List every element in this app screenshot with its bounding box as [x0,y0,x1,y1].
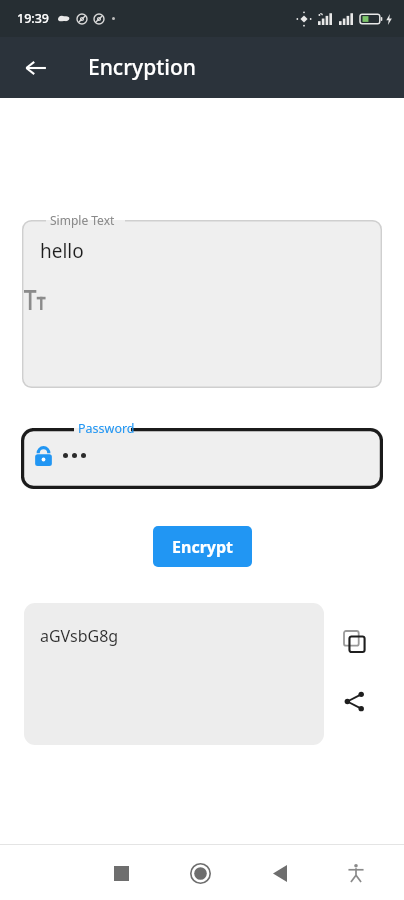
button[interactable]: Text size [24,290,46,310]
staticText: aGVsbG8g [40,625,119,647]
button[interactable]: Copy [334,621,374,661]
staticText: Encrypt [172,536,233,558]
button[interactable]: aGVsbG8g [24,603,324,745]
button[interactable]: Share [334,681,374,721]
staticText: hello [40,238,84,264]
button[interactable]: Encrypt [153,526,252,567]
button[interactable]: Back [258,851,302,895]
staticText: Password [78,420,135,437]
button[interactable] [21,428,383,489]
staticText: Simple Text [50,212,115,228]
button[interactable] [22,220,382,388]
button[interactable]: Accessibility [334,851,378,895]
button[interactable]: Back [12,44,60,92]
staticText: Encryption [88,53,196,82]
button[interactable]: Home [178,851,222,895]
button[interactable]: Recent apps [99,851,143,895]
staticText: 19:39 [17,10,50,27]
